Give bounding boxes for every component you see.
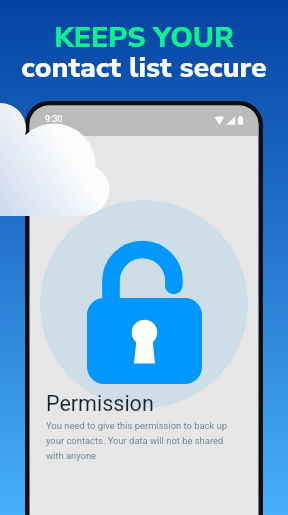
staticText: KEEPS YOUR <box>54 18 234 57</box>
staticText: Permission <box>46 391 154 416</box>
staticText: 9:30 <box>45 114 63 125</box>
staticText: You need to give this permission to back… <box>46 420 234 461</box>
staticText: contact list secure <box>21 48 267 87</box>
